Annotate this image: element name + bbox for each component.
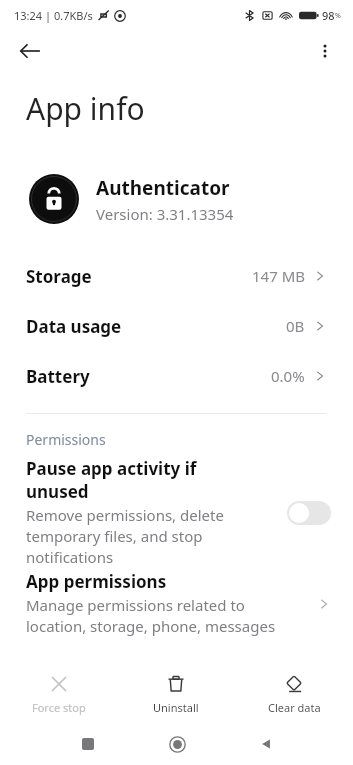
staticText: Force stop xyxy=(32,700,86,715)
staticText: Battery xyxy=(26,365,90,388)
button[interactable]: App permissions xyxy=(0,570,353,637)
button[interactable]: Data usage xyxy=(0,301,353,351)
button[interactable]: More options xyxy=(305,31,345,71)
staticText: Authenticator xyxy=(96,175,230,201)
staticText: Data usage xyxy=(26,315,122,338)
staticText: App permissions xyxy=(26,570,167,593)
button[interactable]: Pause app activity if unused xyxy=(0,455,353,570)
staticText: Pause app activity if unused xyxy=(26,457,197,503)
button[interactable]: Uninstall xyxy=(117,665,235,723)
staticText: 0.0% xyxy=(271,366,305,386)
button[interactable]: Battery xyxy=(0,351,353,401)
staticText: % xyxy=(335,11,341,21)
staticText: App info xyxy=(26,88,145,129)
staticText: 147 MB xyxy=(252,266,305,286)
button[interactable]: Clear data xyxy=(235,665,353,723)
staticText: 98 xyxy=(322,8,335,23)
button[interactable]: Back xyxy=(248,726,284,762)
button[interactable]: Back xyxy=(10,31,50,71)
staticText: Uninstall xyxy=(153,700,199,715)
staticText: 13:24 | 0.7KB/s xyxy=(14,8,93,23)
staticText: Remove permissions, delete temporary fil… xyxy=(26,505,224,568)
button[interactable]: Home xyxy=(159,726,195,762)
staticText: Storage xyxy=(26,265,92,288)
staticText: 0B xyxy=(286,316,305,336)
button[interactable]: Force stop xyxy=(0,665,117,723)
staticText: Permissions xyxy=(26,430,106,449)
button[interactable]: Storage xyxy=(0,251,353,301)
staticText: Version: 3.31.13354 xyxy=(96,204,234,224)
staticText: Manage permissions related to location, … xyxy=(26,595,276,637)
staticText: Clear data xyxy=(268,700,321,715)
button[interactable]: Recents xyxy=(70,726,106,762)
